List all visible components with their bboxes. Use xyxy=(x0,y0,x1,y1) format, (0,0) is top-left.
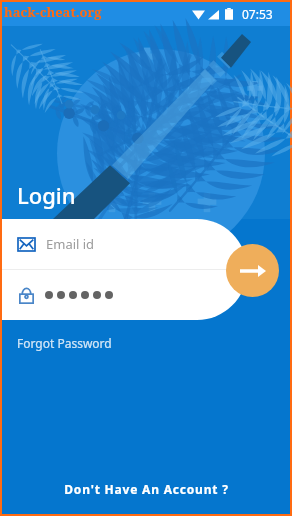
staticText: 07:53 xyxy=(242,6,273,22)
button[interactable]: Email id xyxy=(2,219,247,269)
button[interactable] xyxy=(2,270,247,320)
button[interactable]: Sign in xyxy=(226,244,279,297)
button[interactable]: Don't Have An Account ? xyxy=(2,481,290,514)
staticText: hack-cheat.org xyxy=(4,3,102,21)
staticText: Don't Have An Account ? xyxy=(64,481,229,497)
staticText: Login xyxy=(17,180,76,210)
staticText: Email id xyxy=(46,235,95,253)
button[interactable]: Forgot Password xyxy=(17,335,112,351)
